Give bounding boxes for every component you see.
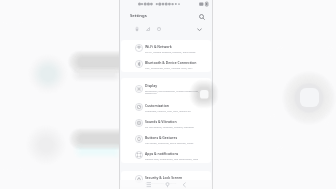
- staticText: Sounds & Vibration: [145, 119, 177, 124]
- staticText: Brightness, eye protection, screen refre…: [145, 89, 206, 95]
- button[interactable]: Buttons & Gestures: [121, 131, 211, 147]
- staticText: Bluetooth & Device Connection: [145, 60, 197, 65]
- staticText: Wallpaper, colours, icon, font, always-o…: [145, 109, 191, 112]
- button[interactable]: Sounds & Vibration: [121, 115, 211, 131]
- staticText: Display: [145, 83, 158, 88]
- button[interactable]: Device care: [154, 24, 163, 33]
- staticText: WLAN, mobile network, hotspot, data usag…: [145, 50, 196, 53]
- staticText: Security & Lock Screen: [145, 175, 183, 180]
- button[interactable]: Bluetooth & Device Connection: [121, 56, 211, 72]
- staticText: Settings: [130, 13, 147, 19]
- button[interactable]: Wi-Fi & Network: [121, 40, 211, 56]
- button[interactable]: Search: [196, 11, 207, 22]
- button[interactable]: Home: [158, 180, 173, 189]
- button[interactable]: Data usage: [143, 24, 152, 33]
- staticText: Do not disturb, ringtone, volume, vibrat…: [145, 125, 194, 128]
- staticText: Nav mode, shortcuts, key & gesture, assi…: [145, 141, 194, 144]
- staticText: Wi-Fi & Network: [145, 44, 172, 49]
- button[interactable]: Display: [121, 78, 211, 99]
- button[interactable]: Expand: [194, 24, 204, 34]
- staticText: Buttons & Gestures: [145, 135, 178, 140]
- button[interactable]: Recents: [141, 180, 156, 189]
- staticText: Default app, notification, app permissio…: [145, 157, 199, 160]
- button[interactable]: Customization: [121, 99, 211, 115]
- button[interactable]: Back: [175, 180, 190, 189]
- button[interactable]: Apps & notifications: [121, 147, 211, 163]
- button[interactable]: Security & Lock Screen: [121, 171, 211, 187]
- staticText: Customization: [145, 103, 169, 108]
- button[interactable]: Battery: [132, 24, 141, 33]
- staticText: NFC, screencast, print, Android Auto, VP…: [145, 66, 193, 69]
- staticText: Apps & notifications: [145, 151, 179, 156]
- staticText: Face, fingerprint, password: [145, 181, 177, 184]
